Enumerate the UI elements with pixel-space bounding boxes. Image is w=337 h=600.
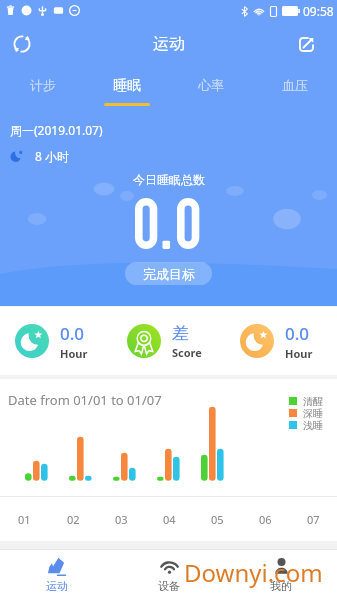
button[interactable]: Share: [290, 28, 322, 60]
staticText: Downyi.com: [184, 556, 323, 589]
staticText: Hour: [60, 346, 88, 361]
button[interactable]: 我的: [225, 550, 337, 600]
staticText: 01: [18, 512, 31, 527]
button[interactable]: 运动: [0, 550, 113, 600]
button[interactable]: 0.0: [0, 307, 113, 375]
staticText: 0.0: [60, 322, 85, 345]
staticText: 03: [115, 512, 128, 527]
button[interactable]: 计步: [0, 66, 85, 109]
staticText: 运动: [153, 34, 185, 54]
staticText: Score: [172, 345, 202, 360]
staticText: 心率: [198, 77, 224, 93]
staticText: 深睡: [303, 407, 323, 419]
button[interactable]: 0.0: [225, 307, 337, 375]
button[interactable]: 心率: [169, 66, 253, 109]
button[interactable]: 设备: [113, 550, 225, 600]
staticText: 05: [211, 512, 224, 527]
staticText: 差: [172, 323, 189, 344]
staticText: 周一(2019.01.07): [10, 122, 103, 138]
button[interactable]: Refresh: [6, 28, 38, 60]
staticText: 血压: [282, 77, 308, 93]
staticText: 02: [67, 512, 80, 527]
staticText: 0.0: [285, 322, 310, 345]
button[interactable]: 完成目标: [125, 262, 212, 285]
button[interactable]: 差: [113, 307, 225, 375]
staticText: 完成目标: [143, 266, 195, 282]
staticText: Date from 01/01 to 01/07: [8, 391, 162, 409]
staticText: Hour: [285, 346, 313, 361]
staticText: 浅睡: [303, 419, 323, 431]
staticText: 设备: [158, 579, 180, 593]
staticText: 8 小时: [35, 148, 69, 164]
staticText: 睡眠: [113, 77, 141, 95]
staticText: 计步: [30, 77, 56, 93]
staticText: 运动: [46, 579, 68, 593]
staticText: 我的: [270, 579, 292, 593]
button[interactable]: 血压: [253, 66, 337, 109]
staticText: 今日睡眠总数: [133, 172, 205, 187]
staticText: 06: [259, 512, 272, 527]
staticText: 09:58: [303, 3, 334, 19]
staticText: 04: [163, 512, 176, 527]
staticText: 清醒: [303, 395, 323, 407]
button[interactable]: 睡眠: [85, 66, 169, 109]
staticText: 07: [307, 512, 320, 527]
